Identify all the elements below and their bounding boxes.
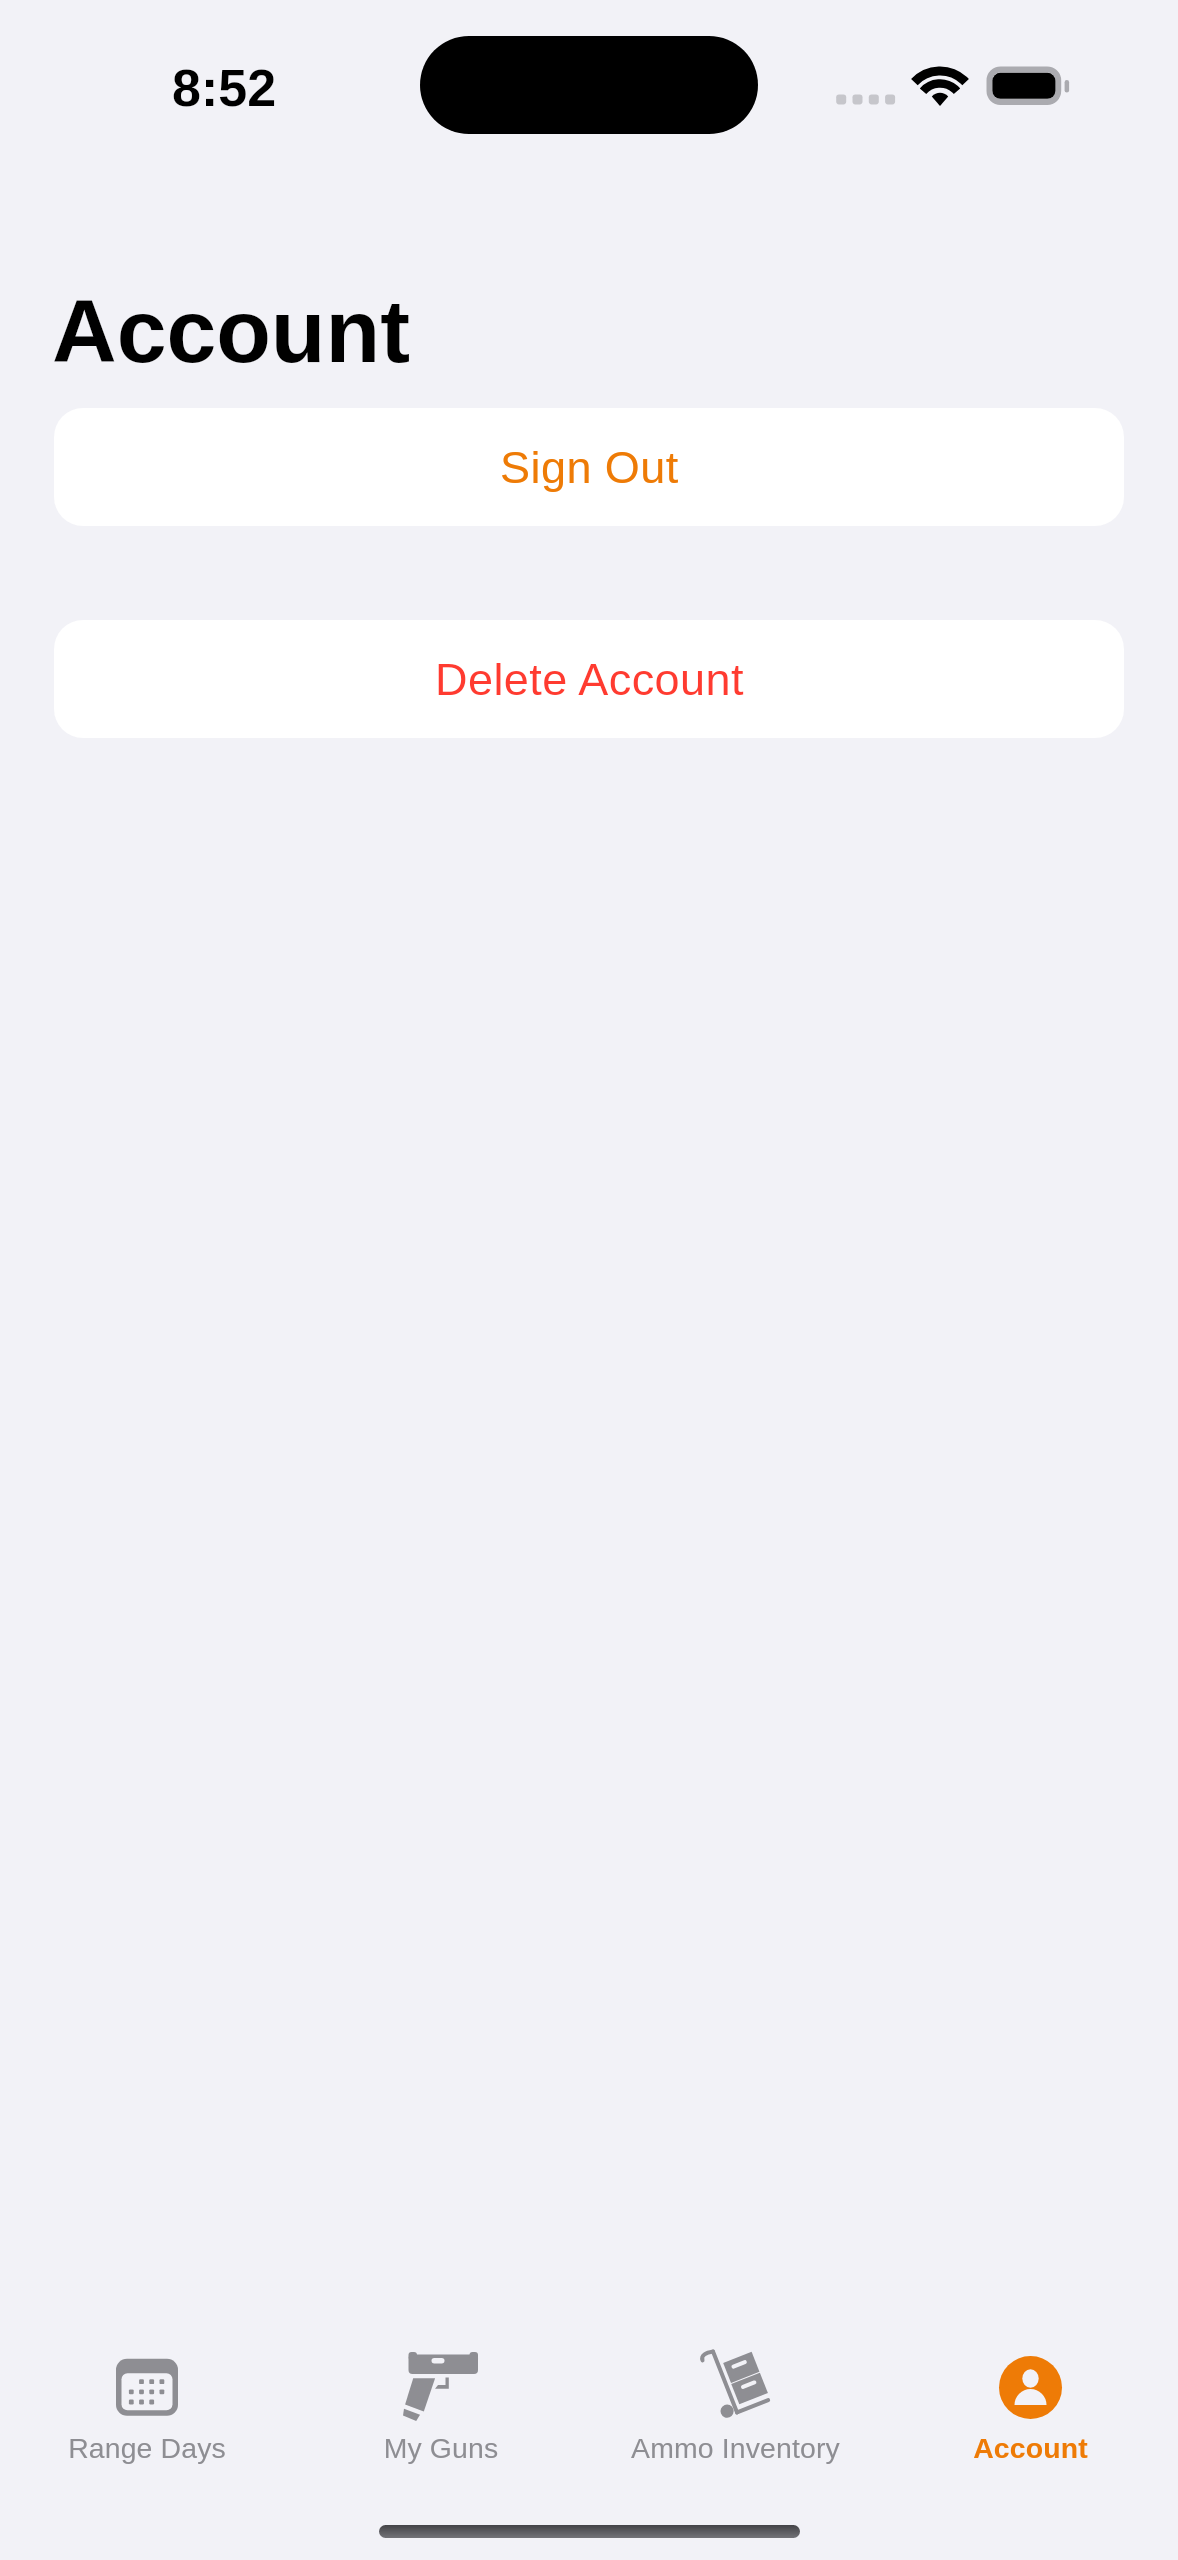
staticText: 8:52 bbox=[172, 59, 277, 117]
staticText: Account bbox=[883, 2432, 1178, 2464]
staticText: My Guns bbox=[294, 2432, 588, 2464]
staticText: Delete Account bbox=[435, 654, 744, 704]
staticText: Sign Out bbox=[500, 442, 679, 492]
button[interactable]: Ammo Inventory bbox=[588, 2352, 883, 2472]
button[interactable]: Sign Out bbox=[54, 408, 1124, 526]
staticText: Range Days bbox=[0, 2432, 294, 2464]
staticText: Account bbox=[52, 281, 410, 381]
button[interactable]: Range Days bbox=[0, 2352, 294, 2472]
staticText: Ammo Inventory bbox=[588, 2432, 883, 2464]
button[interactable]: Account bbox=[883, 2352, 1178, 2472]
button[interactable]: My Guns bbox=[294, 2352, 588, 2472]
button[interactable]: Delete Account bbox=[54, 620, 1124, 738]
